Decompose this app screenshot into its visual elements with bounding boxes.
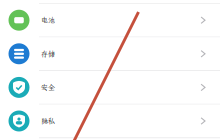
staticText: 安全 (41, 83, 55, 92)
staticText: 电池 (41, 16, 55, 25)
staticText: 隐私 (41, 116, 55, 125)
button[interactable]: 电池 (0, 4, 220, 37)
button[interactable]: 安全 (0, 71, 220, 104)
staticText: 存储 (41, 49, 55, 58)
button[interactable]: 隐私 (0, 105, 220, 137)
button[interactable]: 存储 (0, 37, 220, 70)
